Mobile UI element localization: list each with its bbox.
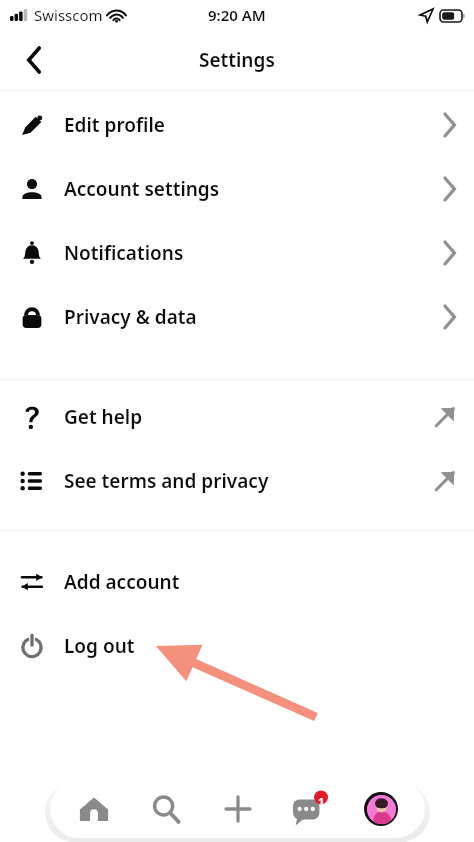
button[interactable]: Get help bbox=[0, 385, 474, 449]
button[interactable]: Add account bbox=[0, 550, 474, 614]
staticText: 9:20 AM bbox=[208, 5, 266, 25]
button[interactable]: Privacy & data bbox=[0, 285, 474, 349]
button[interactable]: Notifications bbox=[0, 221, 474, 285]
staticText: Log out bbox=[64, 633, 135, 659]
button[interactable]: Search bbox=[138, 781, 194, 837]
button[interactable]: Log out bbox=[0, 614, 474, 678]
staticText: Privacy & data bbox=[64, 304, 197, 330]
staticText: Account settings bbox=[64, 176, 220, 202]
button[interactable]: Create bbox=[210, 781, 266, 837]
button[interactable]: Account settings bbox=[0, 157, 474, 221]
staticText: Add account bbox=[64, 569, 180, 595]
button[interactable]: Edit profile bbox=[0, 93, 474, 157]
staticText: Get help bbox=[64, 404, 143, 430]
button[interactable]: Profile bbox=[353, 781, 409, 837]
button[interactable]: Back bbox=[14, 40, 54, 80]
button[interactable]: See terms and privacy bbox=[0, 449, 474, 513]
staticText: Settings bbox=[199, 47, 275, 73]
button[interactable]: Messages bbox=[281, 781, 337, 837]
button[interactable]: Home bbox=[66, 781, 122, 837]
staticText: See terms and privacy bbox=[64, 468, 269, 494]
staticText: Notifications bbox=[64, 240, 184, 266]
staticText: Swisscom bbox=[34, 5, 103, 25]
staticText: 1 bbox=[318, 794, 325, 809]
staticText: Edit profile bbox=[64, 112, 165, 138]
